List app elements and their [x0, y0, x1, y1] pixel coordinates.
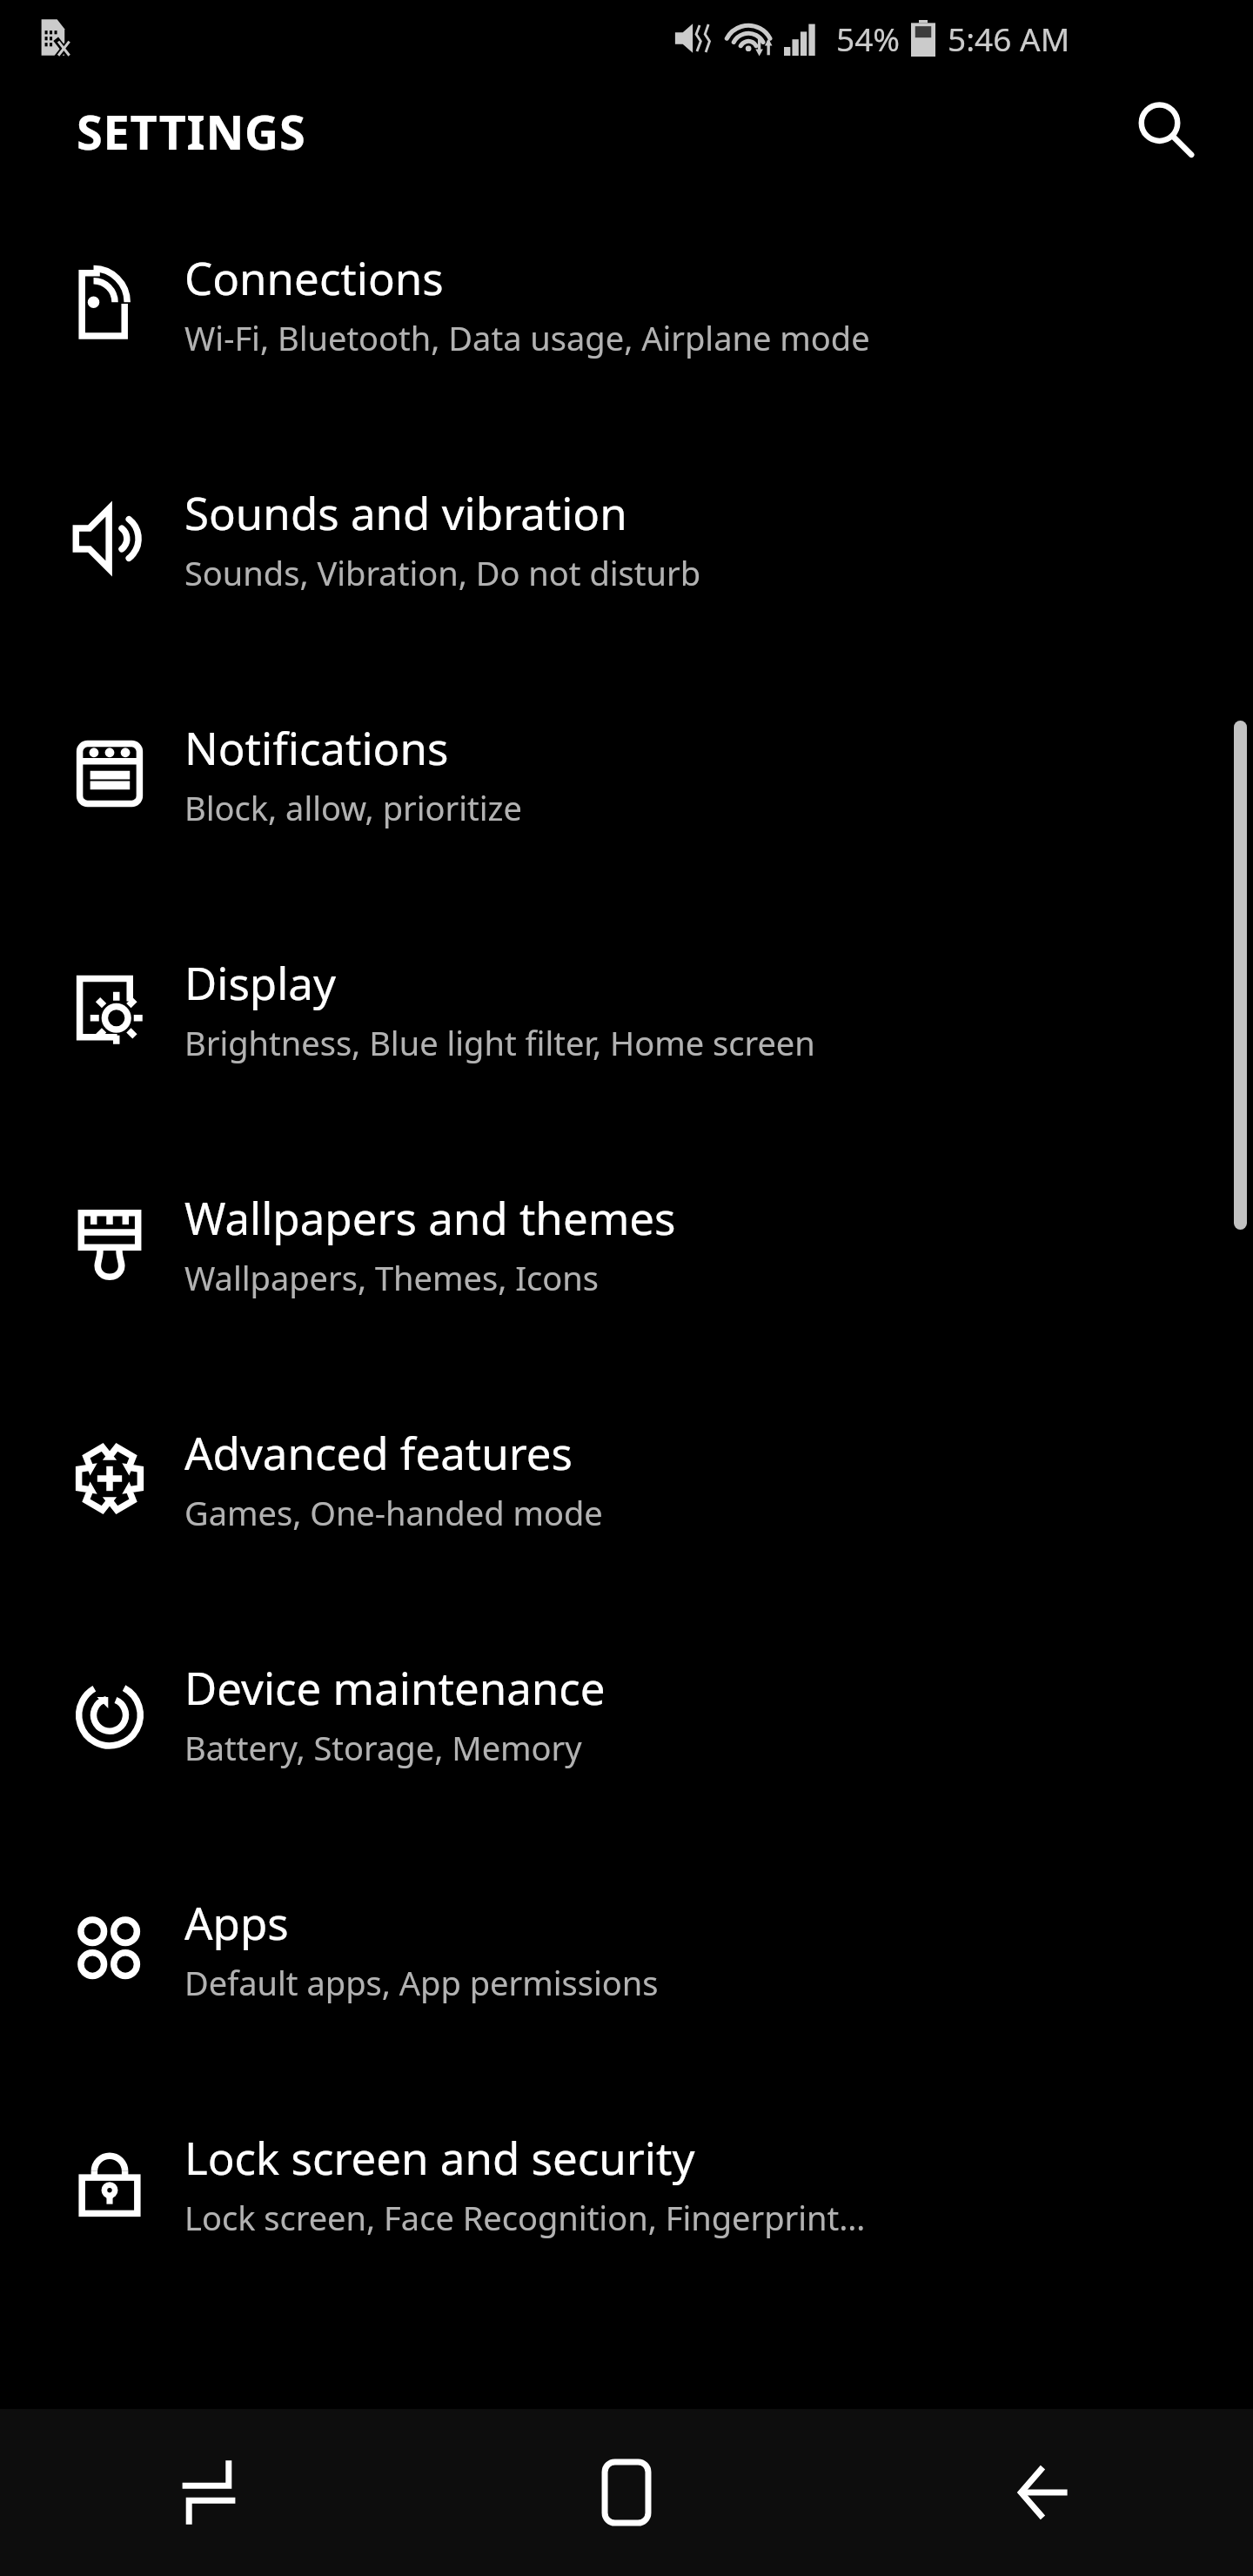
button[interactable]: Display — [0, 891, 1253, 1126]
staticText: Lock screen and security — [184, 2127, 695, 2187]
button[interactable]: Home — [418, 2409, 835, 2576]
staticText: Advanced features — [184, 1422, 573, 1482]
staticText: Wallpapers, Themes, Icons — [184, 1255, 600, 1300]
staticText: Apps — [184, 1892, 289, 1952]
staticText: Default apps, App permissions — [184, 1960, 659, 2005]
staticText: Battery, Storage, Memory — [184, 1725, 582, 1770]
staticText: Wallpapers and themes — [184, 1187, 676, 1247]
staticText: 5:46 AM — [948, 17, 1070, 60]
button[interactable]: Notifications — [0, 656, 1253, 891]
staticText: Lock screen, Face Recognition, Fingerpri… — [184, 2195, 866, 2240]
staticText: 54% — [836, 17, 901, 60]
button[interactable]: Sounds and vibration — [0, 421, 1253, 656]
button[interactable]: Recents — [0, 2409, 418, 2576]
staticText: Connections — [184, 247, 444, 307]
button[interactable]: Device maintenance — [0, 1596, 1253, 1831]
staticText: Sounds, Vibration, Do not disturb — [184, 550, 701, 595]
button[interactable]: Wallpapers and themes — [0, 1126, 1253, 1361]
staticText: SETTINGS — [77, 99, 306, 164]
staticText: Block, allow, prioritize — [184, 785, 522, 830]
staticText: Device maintenance — [184, 1657, 606, 1717]
staticText: Brightness, Blue light filter, Home scre… — [184, 1020, 815, 1065]
button[interactable]: Connections — [0, 186, 1253, 421]
button[interactable]: Search — [1117, 82, 1215, 179]
button[interactable]: Apps — [0, 1831, 1253, 2066]
staticText: Display — [184, 952, 336, 1012]
button[interactable]: Lock screen and security — [0, 2066, 1253, 2301]
staticText: Notifications — [184, 717, 449, 777]
staticText: Games, One-handed mode — [184, 1490, 603, 1535]
button[interactable]: Back — [835, 2409, 1253, 2576]
button[interactable]: Advanced features — [0, 1361, 1253, 1596]
staticText: Wi-Fi, Bluetooth, Data usage, Airplane m… — [184, 315, 870, 360]
staticText: Sounds and vibration — [184, 482, 627, 542]
